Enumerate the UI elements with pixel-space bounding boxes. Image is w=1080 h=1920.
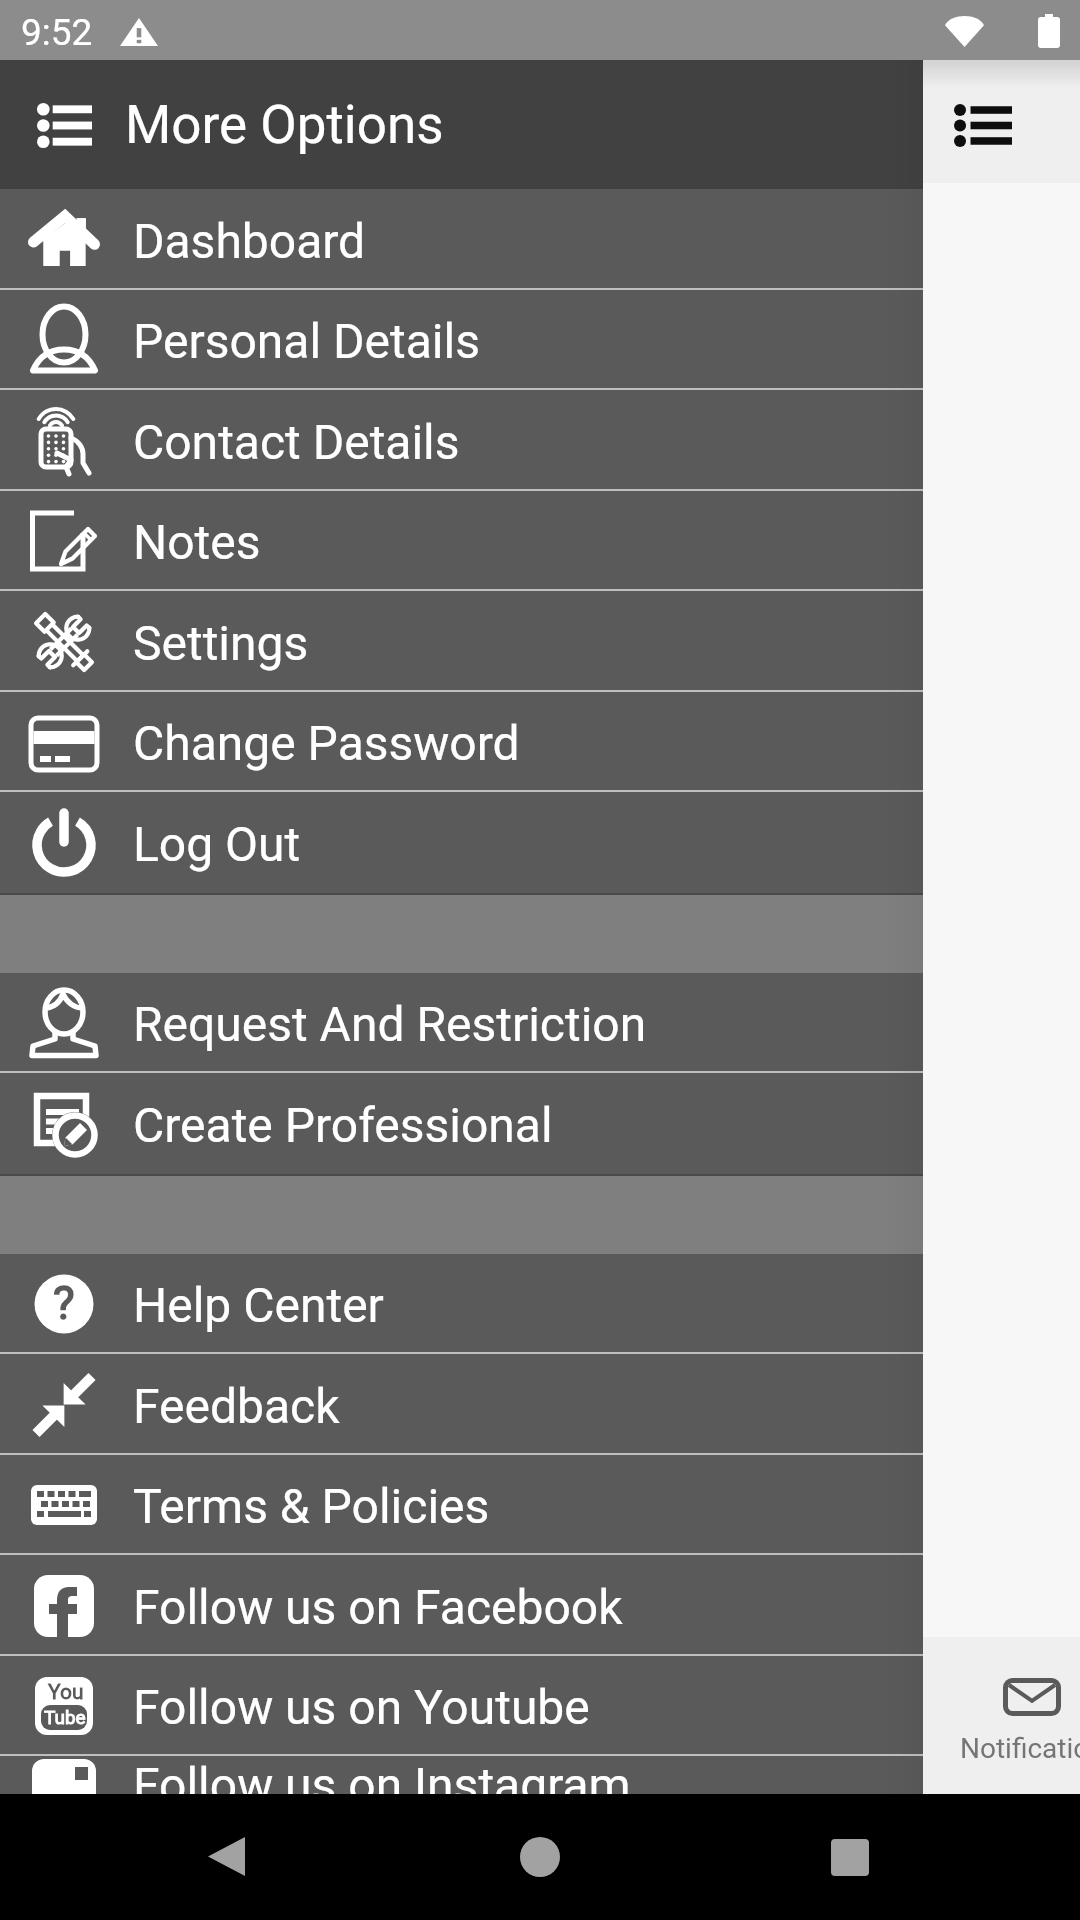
staticText: Follow us on Facebook [133,1579,623,1635]
button[interactable]: ? [0,1254,923,1354]
button[interactable]: Home [504,1821,576,1893]
button[interactable]: Notification [957,1678,1080,1765]
button[interactable]: You [0,1656,923,1756]
button[interactable]: Follow us on Facebook [0,1555,923,1656]
staticText: You [48,1680,84,1705]
button[interactable]: Notes [0,491,923,591]
button[interactable]: Terms & Policies [0,1455,923,1555]
button[interactable]: Open navigation [28,89,100,161]
staticText: Create Professional [133,1097,553,1153]
staticText: Request And Restriction [133,996,647,1052]
button[interactable]: Back [190,1820,262,1892]
staticText: Tube [44,1706,86,1728]
button[interactable]: Menu [947,89,1019,161]
button[interactable]: Follow us on Instagram [0,1756,923,1794]
staticText: Contact Details [133,414,460,470]
staticText: More Options [125,94,444,156]
staticText: 9:52 [21,11,93,54]
staticText: Notes [133,514,261,570]
staticText: Feedback [133,1378,340,1434]
staticText: Dashboard [133,213,366,269]
button[interactable]: Create Professional [0,1073,923,1174]
staticText: Follow us on Instagram [133,1757,631,1794]
button[interactable]: Dashboard [0,189,923,290]
staticText: Follow us on Youtube [133,1679,590,1735]
staticText: Settings [133,615,309,671]
staticText: Notification [960,1732,1080,1765]
button[interactable]: Change Password [0,692,923,792]
staticText: Log Out [133,816,301,872]
staticText: ? [53,1276,75,1330]
staticText: Change Password [133,715,520,771]
button[interactable]: Contact Details [0,390,923,491]
staticText: Terms & Policies [133,1478,490,1534]
button[interactable]: Settings [0,591,923,692]
button[interactable]: Recent apps [814,1821,886,1893]
staticText: Help Center [133,1277,384,1333]
button[interactable]: Log Out [0,792,923,893]
button[interactable]: Personal Details [0,290,923,390]
staticText: Personal Details [133,313,480,369]
button[interactable]: Feedback [0,1354,923,1455]
button[interactable]: Request And Restriction [0,973,923,1073]
